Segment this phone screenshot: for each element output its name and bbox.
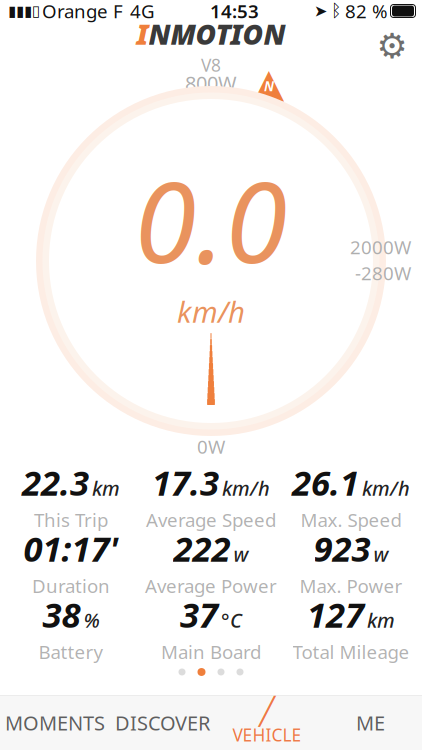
staticText: NMOTION	[148, 15, 285, 53]
staticText: km/h	[177, 292, 245, 331]
staticText: This Trip	[34, 507, 108, 532]
staticText: ▲	[253, 60, 284, 106]
staticText: 37	[180, 591, 218, 637]
staticText: 2000W	[350, 235, 411, 259]
staticText: %	[83, 607, 99, 633]
staticText: °C	[221, 607, 242, 633]
button[interactable]: ME	[319, 696, 422, 750]
staticText: 38	[42, 591, 80, 637]
button[interactable]: MOMENTS	[0, 696, 110, 750]
button[interactable]: ╱	[215, 696, 319, 750]
staticText: DISCOVER	[115, 709, 210, 736]
staticText: MOMENTS	[5, 709, 105, 736]
staticText: km/h	[222, 475, 270, 501]
staticText: VEHICLE	[232, 723, 301, 746]
staticText: ➤	[314, 2, 327, 20]
staticText: ▮▮▮▯	[8, 3, 40, 19]
staticText: 82 %	[345, 0, 388, 23]
staticText: 4G	[130, 0, 155, 23]
staticText: 800W	[185, 70, 237, 96]
staticText: Orange F	[42, 0, 123, 23]
staticText: 0.0	[134, 145, 287, 294]
staticText: Duration	[32, 573, 110, 598]
staticText: 127	[307, 591, 364, 637]
staticText: km	[92, 475, 120, 501]
staticText: Total Mileage	[292, 639, 409, 664]
button[interactable]: Settings	[370, 24, 414, 68]
staticText: ╱	[259, 696, 275, 726]
staticText: 14:53	[210, 0, 259, 23]
staticText: 0W	[197, 434, 225, 459]
staticText: Battery	[38, 639, 103, 664]
staticText: w	[373, 541, 388, 567]
staticText: 17.3	[152, 459, 219, 505]
staticText: -280W	[355, 260, 411, 285]
staticText: Max. Speed	[300, 507, 401, 532]
staticText: Main Board	[161, 639, 261, 664]
staticText: 26.1	[292, 459, 359, 505]
staticText: 01:17'	[23, 525, 118, 571]
staticText: 222	[173, 525, 230, 571]
button[interactable]: DISCOVER	[110, 696, 215, 750]
staticText: km/h	[362, 475, 410, 501]
staticText: ⚙	[376, 26, 407, 66]
staticText: Average Power	[145, 573, 277, 598]
staticText: 22.3	[22, 459, 89, 505]
staticText: V8	[201, 54, 221, 77]
staticText: N	[264, 77, 274, 95]
staticText: w	[233, 541, 248, 567]
staticText: ᛒ	[331, 2, 341, 19]
staticText: Average Speed	[146, 507, 276, 532]
staticText: Max. Power	[299, 573, 402, 598]
staticText: km	[367, 607, 395, 633]
staticText: 923	[313, 525, 370, 571]
staticText: I	[136, 15, 148, 53]
staticText: ME	[356, 709, 385, 736]
